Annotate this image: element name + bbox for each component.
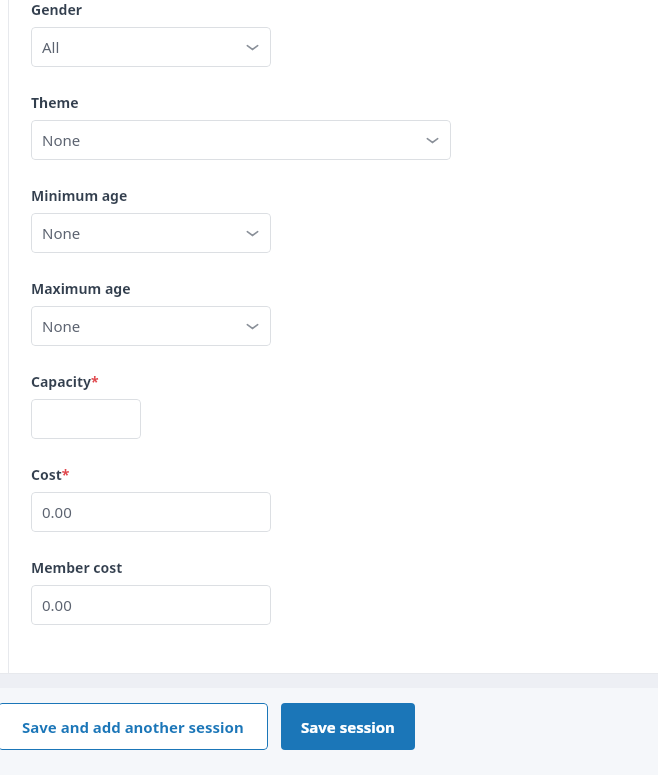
staticText: None <box>42 130 426 150</box>
staticText: 0.00 <box>42 502 72 522</box>
button[interactable]: Save session <box>281 703 415 750</box>
staticText: All <box>42 37 246 57</box>
staticText: Gender <box>31 0 83 19</box>
staticText: Save session <box>301 717 395 737</box>
button[interactable]: None <box>31 306 271 346</box>
staticText: Capacity* <box>31 372 99 391</box>
button[interactable]: All <box>31 27 271 67</box>
staticText: Cost* <box>31 465 70 484</box>
button[interactable]: Save and add another session <box>0 703 268 750</box>
staticText: Member cost <box>31 558 123 577</box>
button[interactable]: None <box>31 120 451 160</box>
staticText: Save and add another session <box>22 717 244 737</box>
staticText: Minimum age <box>31 186 128 205</box>
button[interactable] <box>31 399 141 439</box>
button[interactable]: 0.00 <box>31 585 271 625</box>
button[interactable]: None <box>31 213 271 253</box>
staticText: None <box>42 223 246 243</box>
staticText: Theme <box>31 93 79 112</box>
staticText: None <box>42 316 246 336</box>
staticText: 0.00 <box>42 595 72 615</box>
button[interactable]: 0.00 <box>31 492 271 532</box>
staticText: Maximum age <box>31 279 131 298</box>
